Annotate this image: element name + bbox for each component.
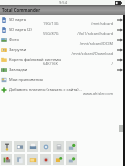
button[interactable]: Menu item 2	[14, 141, 25, 152]
staticText: Добавить плагины (скачать с сайта)...	[9, 87, 82, 92]
other: Open Загрузки	[117, 48, 123, 52]
staticText: /mnt/sdcard/Download	[71, 51, 113, 55]
staticText: Корень файловой системы	[9, 57, 62, 62]
staticText: 64K/16K	[43, 61, 58, 65]
other: Open SD карта (2)	[117, 28, 123, 32]
button[interactable]: Добавить плагины (скачать с сайта)...	[0, 85, 125, 95]
staticText: /Vol1/sdcard/sdcard	[77, 31, 113, 35]
other: Open Закладки	[117, 68, 123, 72]
button[interactable]: Menu item 9	[27, 154, 38, 165]
staticText: Мои приложения	[9, 77, 43, 82]
staticText: www.ghisler.com	[82, 91, 113, 95]
staticText: /mnt/sdcard	[90, 21, 113, 25]
staticText: 19G/13G	[43, 21, 59, 25]
button[interactable]: Мои приложения	[0, 75, 125, 85]
staticText: Загрузки	[9, 47, 27, 52]
button[interactable]: Total Commander	[0, 5, 125, 15]
button[interactable]: Menu item 5	[53, 141, 64, 152]
staticText: Закладки	[9, 67, 28, 72]
button[interactable]: SD карта	[0, 15, 125, 25]
button[interactable]: Загрузки	[0, 45, 125, 55]
button[interactable]: Фото	[0, 35, 125, 45]
button[interactable]: SD карта (2)	[0, 25, 125, 35]
staticText: Фото	[9, 37, 19, 42]
staticText: /mnt/sdcard/DCIM	[79, 41, 113, 45]
button[interactable]: Menu item 8	[14, 154, 25, 165]
button[interactable]: Menu item 1	[1, 141, 12, 152]
button[interactable]: Menu item 12	[66, 154, 77, 165]
other: Open Корень файловой системы	[117, 58, 123, 62]
button[interactable]: Menu item 11	[53, 154, 64, 165]
staticText: /	[111, 61, 113, 65]
button[interactable]: Menu item 6	[66, 141, 77, 152]
staticText: Total Commander	[2, 7, 41, 13]
other: Open SD карта	[117, 18, 123, 22]
staticText: SD карта (2)	[9, 27, 32, 32]
button[interactable]: Menu item 3	[27, 141, 38, 152]
staticText: 55G/87G	[43, 31, 59, 35]
other: Open Фото	[117, 38, 123, 42]
button[interactable]: Menu item 10	[40, 154, 51, 165]
button[interactable]: Menu item 4	[40, 141, 51, 152]
button[interactable]: Закладки	[0, 65, 125, 75]
staticText: SD карта	[9, 17, 26, 22]
button[interactable]: Menu item 7	[1, 154, 12, 165]
button[interactable]: Корень файловой системы	[0, 55, 125, 65]
staticText: 9:54	[59, 0, 67, 5]
